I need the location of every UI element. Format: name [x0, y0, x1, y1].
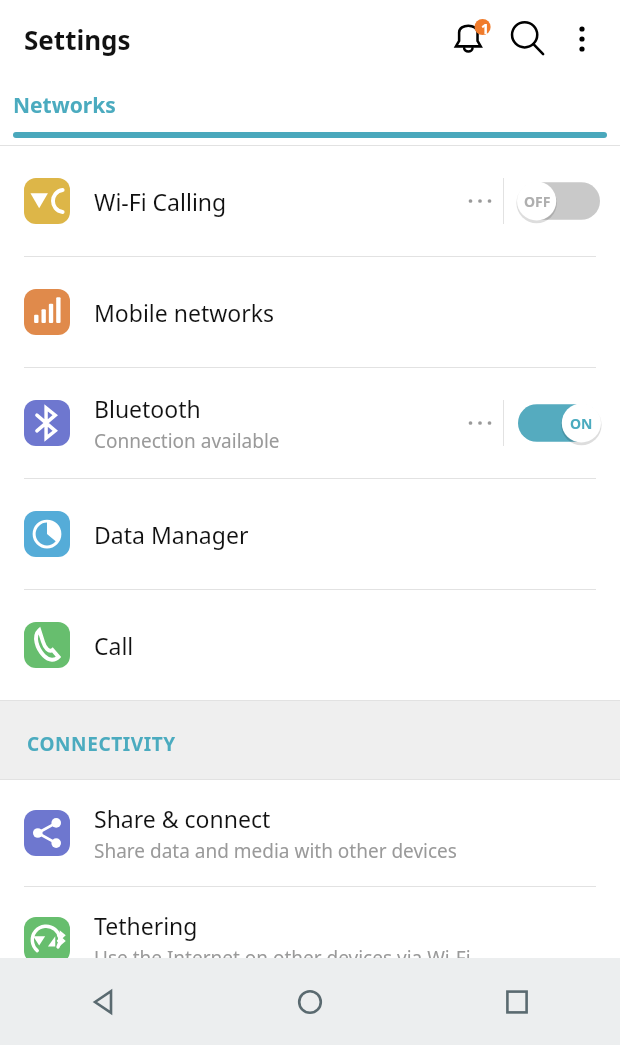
staticText: Share & connect: [94, 803, 271, 834]
button[interactable]: Data Manager: [0, 479, 620, 589]
button[interactable]: More for Bluetooth: [457, 400, 503, 446]
button[interactable]: Bluetooth: [0, 368, 620, 478]
button[interactable]: Back: [0, 958, 206, 1045]
button[interactable]: Home: [206, 958, 413, 1045]
button[interactable]: Share & connect: [0, 780, 620, 886]
button[interactable]: Recent apps: [413, 958, 620, 1045]
staticText: 1: [481, 19, 490, 38]
staticText: Mobile networks: [94, 297, 275, 328]
staticText: Data Manager: [94, 519, 249, 550]
staticText: Networks: [13, 91, 116, 120]
button[interactable]: Notifications: [444, 11, 500, 67]
button[interactable]: Mobile networks: [0, 257, 620, 367]
button[interactable]: Search: [500, 11, 556, 67]
button[interactable]: More options: [556, 13, 608, 65]
staticText: Settings: [24, 22, 131, 57]
button[interactable]: Networks: [0, 78, 620, 145]
staticText: Bluetooth: [94, 393, 201, 424]
staticText: Share data and media with other devices: [94, 838, 457, 864]
staticText: CONNECTIVITY: [27, 731, 176, 757]
staticText: Call: [94, 630, 134, 661]
button[interactable]: Call: [0, 590, 620, 700]
staticText: Wi-Fi Calling: [94, 186, 227, 217]
button[interactable]: Wi-Fi Calling switch: [518, 178, 600, 224]
staticText: Use the Internet on other devices via Wi…: [94, 945, 471, 971]
staticText: ON: [570, 414, 593, 433]
staticText: Connection available: [94, 428, 280, 454]
button[interactable]: Wi-Fi Calling: [0, 146, 620, 256]
staticText: OFF: [524, 192, 551, 211]
button[interactable]: Bluetooth switch: [518, 400, 600, 446]
button[interactable]: More for Wi-Fi Calling: [457, 178, 503, 224]
button[interactable]: Tethering: [0, 887, 620, 993]
staticText: Tethering: [94, 910, 198, 941]
